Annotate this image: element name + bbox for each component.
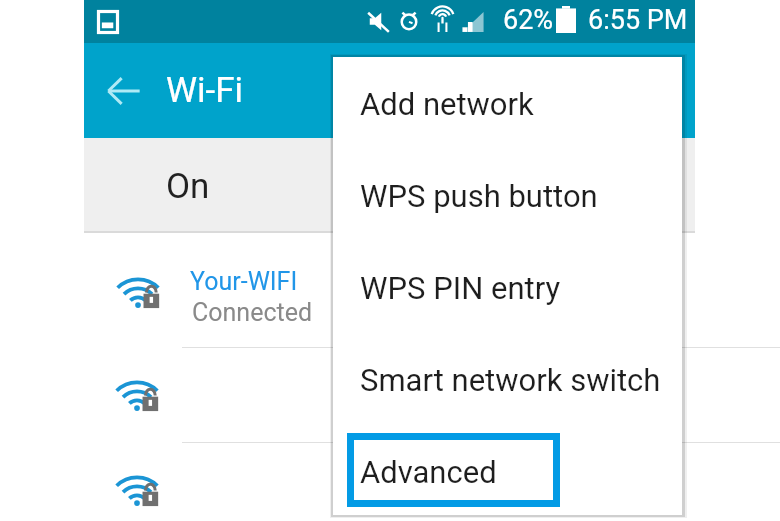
staticText: Advanced	[360, 454, 497, 490]
staticText: Connected	[192, 298, 313, 327]
staticText: Smart network switch	[360, 362, 661, 398]
button[interactable]: Your-WIFI	[84, 231, 695, 345]
staticText: WPS PIN entry	[360, 270, 561, 306]
staticText: 62%	[503, 4, 554, 36]
staticText: WPS push button	[360, 178, 598, 214]
staticText: On	[166, 166, 210, 207]
button[interactable]: Advanced	[333, 425, 682, 517]
staticText: Your-WIFI	[190, 267, 298, 296]
button[interactable]: Back	[102, 70, 144, 112]
button[interactable]: WPS PIN entry	[333, 241, 682, 333]
staticText: 6:55 PM	[588, 4, 688, 36]
staticText: Add network	[360, 86, 534, 122]
staticText: Wi-Fi	[166, 70, 244, 111]
button[interactable]	[84, 443, 695, 519]
button[interactable]: WPS push button	[333, 149, 682, 241]
button[interactable]	[84, 348, 695, 442]
button[interactable]: Smart network switch	[333, 333, 682, 425]
button[interactable]: Add network	[333, 57, 682, 149]
